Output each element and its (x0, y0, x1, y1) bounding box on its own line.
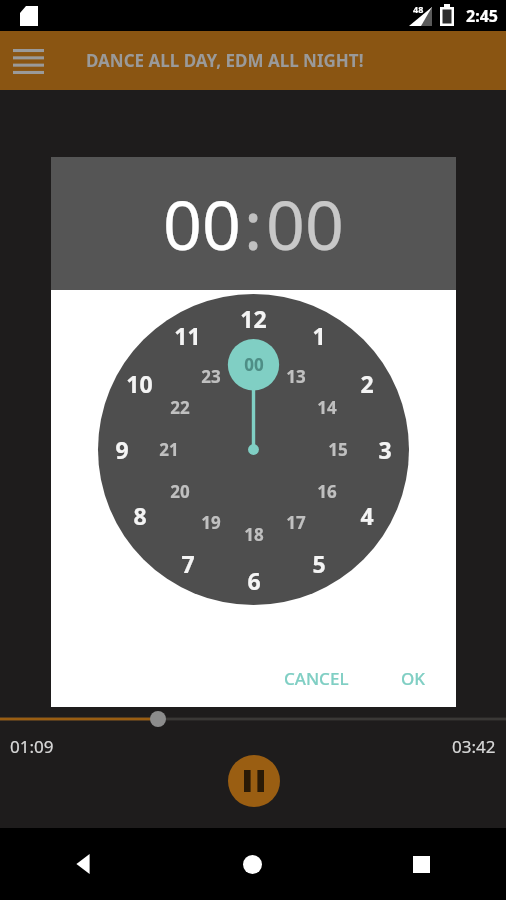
staticText: 13 (286, 365, 306, 388)
staticText: 19 (201, 511, 221, 534)
button[interactable]: 00 (163, 177, 241, 270)
staticText: 2 (360, 368, 374, 399)
staticText: 3 (378, 434, 392, 465)
staticText: 16 (317, 480, 337, 503)
staticText: DANCE ALL DAY, EDM ALL NIGHT! (86, 49, 364, 72)
staticText: 1 (312, 320, 326, 351)
staticText: CANCEL (284, 667, 349, 690)
button[interactable]: Back (0, 828, 168, 900)
staticText: 20 (170, 480, 190, 503)
staticText: 17 (286, 511, 306, 534)
button[interactable]: Home (168, 828, 337, 900)
staticText: 14 (317, 396, 337, 419)
staticText: 21 (159, 438, 179, 461)
staticText: 23 (201, 365, 221, 388)
staticText: 7 (181, 548, 195, 579)
staticText: 9 (115, 434, 129, 465)
staticText: 18 (244, 523, 264, 546)
staticText: 10 (126, 368, 153, 399)
button[interactable]: Select hour (98, 294, 409, 605)
staticText: 15 (328, 438, 348, 461)
staticText: 8 (133, 500, 147, 531)
button[interactable]: CANCEL (272, 659, 361, 698)
staticText: 00 (244, 353, 264, 376)
button[interactable]: Pause (228, 755, 280, 807)
staticText: 2:45 (466, 5, 498, 27)
staticText: 01:09 (10, 735, 54, 758)
staticText: 22 (170, 396, 190, 419)
button[interactable]: Seek position (150, 711, 166, 727)
staticText: 5 (312, 548, 326, 579)
staticText: 48 (413, 3, 424, 15)
button[interactable]: 00 (266, 177, 344, 270)
button[interactable]: Recent apps (337, 828, 506, 900)
button[interactable]: OK (389, 659, 438, 698)
staticText: OK (401, 667, 426, 690)
staticText: 03:42 (452, 735, 496, 758)
staticText: 4 (360, 500, 374, 531)
staticText: : (244, 177, 263, 270)
staticText: 12 (240, 303, 267, 334)
button[interactable]: Open navigation drawer (0, 33, 56, 89)
staticText: 6 (247, 565, 261, 596)
staticText: 11 (174, 320, 201, 351)
